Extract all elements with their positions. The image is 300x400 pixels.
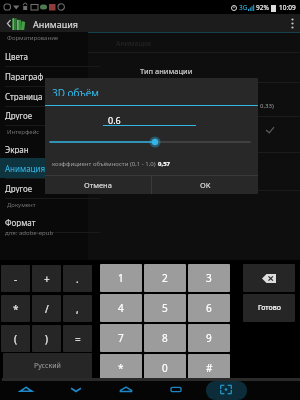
staticText: Анимация (33, 18, 79, 28)
button[interactable]: - (1, 265, 30, 292)
staticText: 1 (118, 271, 124, 285)
staticText: Экран (5, 144, 29, 154)
staticText: * (13, 302, 19, 316)
staticText: Цвета (5, 51, 28, 61)
staticText: + (44, 272, 50, 286)
button[interactable]: Backspace (243, 264, 295, 292)
staticText: для: adobe-epub (5, 229, 54, 237)
staticText: Русский (34, 361, 61, 371)
button[interactable]: * (1, 295, 30, 322)
staticText: 3D объём (52, 86, 99, 96)
button[interactable] (0, 86, 88, 106)
staticText: 92% (256, 3, 269, 12)
staticText: , (76, 302, 79, 316)
button[interactable]: , (63, 295, 92, 322)
button[interactable]: * (100, 354, 142, 382)
staticText: Готово (258, 303, 281, 313)
button[interactable] (0, 105, 88, 125)
staticText: Страница (5, 91, 43, 101)
button[interactable]: 8 (144, 324, 186, 352)
staticText: Другое (5, 110, 33, 120)
staticText: = (75, 332, 81, 346)
staticText: Документ (7, 201, 36, 209)
staticText: Интерфейс (7, 128, 40, 136)
button[interactable]: 9 (188, 324, 230, 352)
staticText: коэффициент объёмности (0,1 - 1,0) (52, 160, 158, 168)
staticText: # (206, 361, 213, 375)
staticText: - (14, 272, 18, 286)
button[interactable]: More options (284, 15, 300, 31)
button[interactable]: Back (2, 16, 16, 30)
button[interactable]: 0 (144, 354, 186, 382)
button[interactable] (0, 46, 88, 66)
button[interactable]: = (63, 325, 92, 352)
button[interactable]: ОК (152, 176, 258, 194)
staticText: 5 (162, 301, 168, 315)
staticText: 2 (162, 271, 168, 285)
staticText: 3G (239, 3, 248, 12)
button[interactable]: Готово (243, 294, 295, 322)
button[interactable]: ( (1, 325, 30, 352)
staticText: 3 (206, 271, 212, 285)
button[interactable]: 6 (188, 294, 230, 322)
staticText: Другое (5, 183, 33, 193)
button[interactable]: ) (32, 325, 61, 352)
staticText: 0.6 (108, 114, 121, 124)
button[interactable]: + (32, 265, 61, 292)
staticText: Тип анимации (140, 66, 193, 76)
staticText: / (45, 302, 49, 316)
staticText: 8 (162, 331, 168, 345)
button[interactable]: Hide keyboard (62, 378, 90, 400)
button[interactable]: 5 (144, 294, 186, 322)
button[interactable]: 3 (188, 264, 230, 292)
button[interactable] (0, 158, 88, 178)
staticText: 7 (118, 331, 124, 345)
staticText: Отмена (84, 180, 112, 190)
button[interactable]: Back (12, 378, 40, 400)
button[interactable]: 1 (100, 264, 142, 292)
staticText: Анимация (116, 39, 152, 49)
button[interactable]: 2 (144, 264, 186, 292)
staticText: * (118, 361, 124, 375)
button[interactable]: # (188, 354, 230, 382)
button[interactable]: Home (112, 378, 140, 400)
button[interactable]: 7 (100, 324, 142, 352)
staticText: 10:09 (279, 3, 296, 12)
button[interactable] (0, 212, 88, 232)
button[interactable]: Отмена (45, 176, 151, 194)
button[interactable] (0, 139, 88, 159)
staticText: 0,33) (260, 102, 274, 110)
button[interactable] (0, 66, 88, 86)
button[interactable]: 4 (100, 294, 142, 322)
staticText: ) (45, 332, 48, 346)
staticText: . (76, 272, 79, 286)
staticText: 9 (206, 331, 212, 345)
staticText: 4 (118, 301, 124, 315)
button[interactable]: Recent apps (162, 378, 190, 400)
button[interactable] (0, 178, 88, 198)
button[interactable]: Русский (3, 353, 92, 379)
staticText: 0,57 (158, 160, 171, 168)
staticText: 6 (206, 301, 212, 315)
staticText: ( (14, 332, 17, 346)
staticText: Параграф (5, 71, 44, 81)
staticText: 0 (162, 361, 168, 375)
staticText: ОК (200, 180, 211, 190)
staticText: Анимация (5, 163, 46, 173)
button[interactable]: . (63, 265, 92, 292)
button[interactable]: / (32, 295, 61, 322)
staticText: Форматирование (7, 34, 59, 42)
button[interactable]: Exit fullscreen (212, 378, 240, 400)
staticText: Формат (5, 217, 36, 227)
